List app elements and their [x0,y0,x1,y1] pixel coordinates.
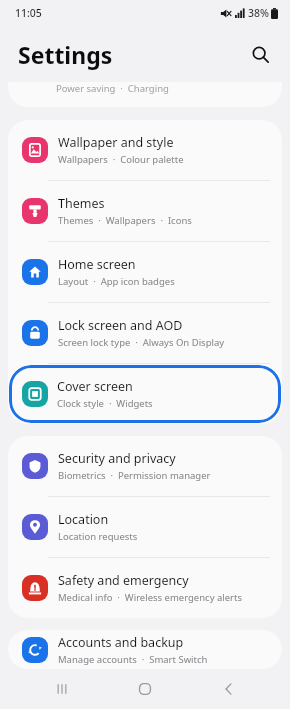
button[interactable]: Security and privacy [8,436,282,496]
button[interactable]: Power saving · Charging [8,82,282,107]
staticText: Safety and emergency [58,572,189,589]
staticText: Biometrics · Permission manager [58,469,211,482]
staticText: Wallpapers · Colour palette [58,153,184,166]
button[interactable]: Search [242,36,278,72]
staticText: Medical info · Wireless emergency alerts [58,591,243,604]
button[interactable]: Home screen [8,242,282,302]
button[interactable]: Wallpaper and style [8,120,282,180]
staticText: Accounts and backup [58,634,184,651]
staticText: Layout · App icon badges [58,275,175,288]
staticText: Power saving · Charging [56,82,169,95]
staticText: Settings [18,39,113,70]
button[interactable]: Home [123,669,167,709]
staticText: 11:05 [15,6,42,20]
staticText: Location requests [58,530,138,543]
button[interactable]: Recent apps [40,669,84,709]
button[interactable]: Themes [8,181,282,241]
button[interactable]: Safety and emergency [8,558,282,618]
staticText: Security and privacy [58,450,176,467]
staticText: Home screen [58,256,136,273]
button[interactable]: Accounts and backup [8,630,282,669]
button[interactable]: Lock screen and AOD [8,303,282,363]
staticText: Manage accounts · Smart Switch [58,653,208,666]
button[interactable]: Back [207,669,251,709]
staticText: Location [58,511,109,528]
staticText: Cover screen [57,378,133,395]
staticText: Themes [58,195,105,212]
button[interactable]: Cover screen [9,365,281,423]
button[interactable]: Location [8,497,282,557]
staticText: Lock screen and AOD [58,317,183,334]
staticText: Screen lock type · Always On Display [58,336,225,349]
staticText: 38% [248,6,269,20]
staticText: Wallpaper and style [58,134,174,151]
staticText: Themes · Wallpapers · Icons [58,214,192,227]
staticText: Clock style · Widgets [57,397,153,410]
